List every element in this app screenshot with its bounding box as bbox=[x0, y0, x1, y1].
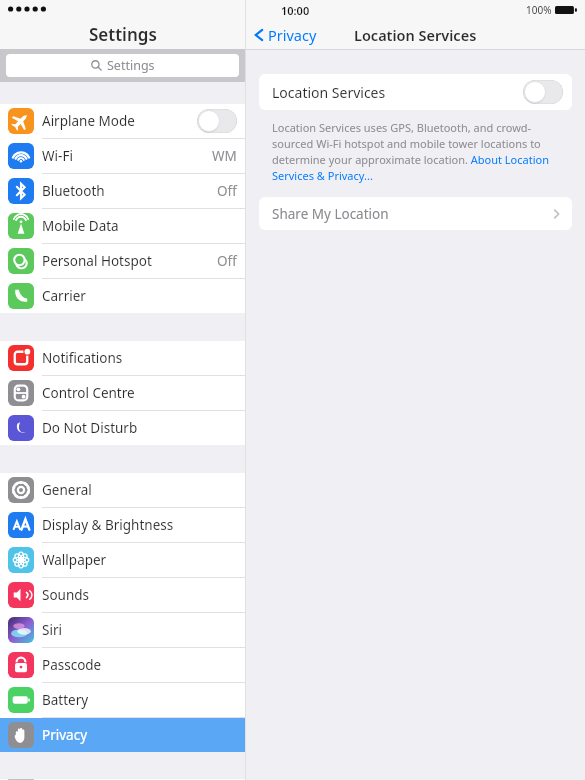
button[interactable]: Privacy bbox=[0, 718, 245, 752]
button[interactable]: Control Centre bbox=[0, 376, 245, 410]
button[interactable] bbox=[0, 779, 245, 780]
staticText: Carrier bbox=[42, 287, 86, 305]
button[interactable]: Carrier bbox=[0, 279, 245, 313]
staticText: Off bbox=[217, 252, 237, 270]
button[interactable]: Toggle bbox=[523, 80, 563, 104]
staticText: Display & Brightness bbox=[42, 516, 174, 534]
button[interactable]: Bluetooth bbox=[0, 174, 245, 208]
staticText: Siri bbox=[42, 621, 62, 639]
staticText: Privacy bbox=[268, 25, 317, 45]
button[interactable]: Personal Hotspot bbox=[0, 244, 245, 278]
staticText: 100% bbox=[526, 3, 552, 17]
staticText: WM bbox=[212, 147, 237, 165]
staticText: Personal Hotspot bbox=[42, 252, 152, 270]
staticText: Settings bbox=[89, 23, 157, 46]
staticText: Bluetooth bbox=[42, 182, 105, 200]
staticText: Off bbox=[217, 182, 237, 200]
staticText: Share My Location bbox=[272, 205, 389, 223]
staticText: Airplane Mode bbox=[42, 112, 135, 130]
staticText: Location Services bbox=[354, 25, 477, 45]
staticText: Privacy bbox=[42, 726, 88, 744]
button[interactable]: Toggle bbox=[197, 109, 237, 133]
staticText: 10:00 bbox=[281, 3, 310, 18]
button[interactable]: Siri bbox=[0, 613, 245, 647]
button[interactable]: General bbox=[0, 473, 245, 507]
staticText: Notifications bbox=[42, 349, 123, 367]
button[interactable]: Do Not Disturb bbox=[0, 411, 245, 445]
staticText: Sounds bbox=[42, 586, 90, 604]
button[interactable]: Airplane Mode bbox=[0, 104, 245, 138]
button[interactable]: Wi-Fi bbox=[0, 139, 245, 173]
button[interactable]: Location Services bbox=[259, 74, 572, 110]
button[interactable]: Settings bbox=[6, 54, 239, 77]
staticText: Mobile Data bbox=[42, 217, 119, 235]
button[interactable]: Passcode bbox=[0, 648, 245, 682]
staticText: Location Services uses GPS, Bluetooth, a… bbox=[272, 120, 559, 183]
button[interactable]: Notifications bbox=[0, 341, 245, 375]
staticText: Wi-Fi bbox=[42, 147, 73, 165]
staticText: Location Services bbox=[272, 83, 386, 102]
button[interactable]: Wallpaper bbox=[0, 543, 245, 577]
staticText: Settings bbox=[107, 57, 155, 74]
button[interactable]: Battery bbox=[0, 683, 245, 717]
button[interactable]: Mobile Data bbox=[0, 209, 245, 243]
button[interactable]: Privacy bbox=[254, 25, 317, 45]
button[interactable]: Share My Location bbox=[259, 197, 572, 230]
staticText: Control Centre bbox=[42, 384, 135, 402]
staticText: Wallpaper bbox=[42, 551, 107, 569]
button[interactable]: Sounds bbox=[0, 578, 245, 612]
staticText: General bbox=[42, 481, 92, 499]
staticText: Battery bbox=[42, 691, 89, 709]
staticText: Do Not Disturb bbox=[42, 419, 138, 437]
button[interactable]: Display & Brightness bbox=[0, 508, 245, 542]
staticText: Passcode bbox=[42, 656, 102, 674]
